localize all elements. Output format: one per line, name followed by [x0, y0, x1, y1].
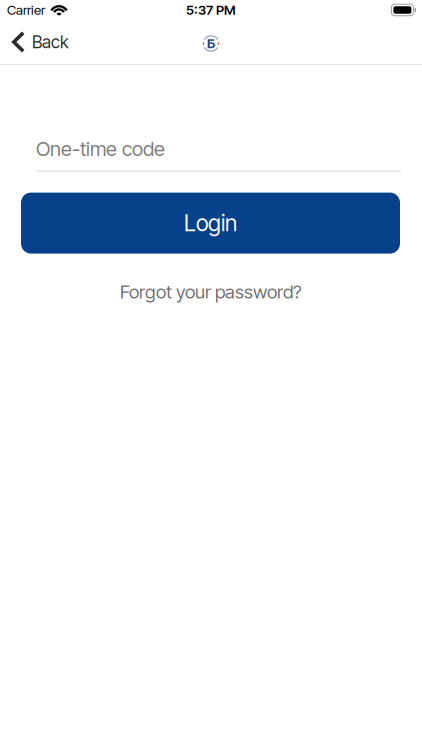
button[interactable]: Б: [200, 31, 221, 52]
staticText: Carrier: [7, 2, 45, 18]
staticText: 5:37 PM: [186, 2, 236, 18]
button[interactable]: Login: [0, 193, 422, 254]
staticText: Forgot your password?: [120, 281, 302, 303]
staticText: Б: [207, 36, 215, 51]
staticText: One-time code: [36, 137, 165, 161]
staticText: Login: [184, 210, 237, 236]
staticText: Back: [32, 32, 69, 52]
button[interactable]: Forgot your password?: [120, 281, 302, 303]
button[interactable]: Back: [12, 31, 69, 53]
button[interactable]: One-time code: [0, 137, 422, 172]
